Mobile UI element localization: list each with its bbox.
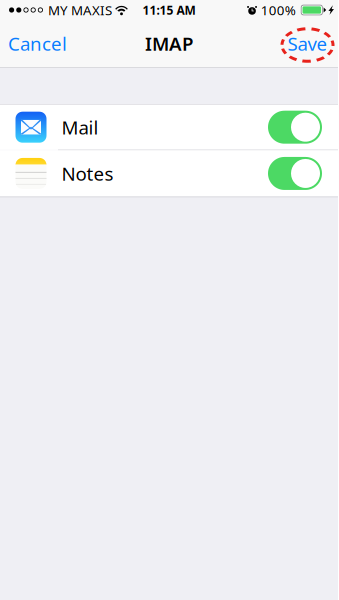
staticText: Cancel xyxy=(8,31,67,56)
staticText: Notes xyxy=(61,161,113,186)
button[interactable]: Mail xyxy=(0,105,338,150)
staticText: Mail xyxy=(61,115,98,140)
staticText: 11:15 AM xyxy=(142,2,195,18)
button[interactable]: Notes xyxy=(0,150,338,197)
staticText: Save xyxy=(287,31,327,56)
staticText: IMAP xyxy=(145,31,193,56)
staticText: MY MAXIS xyxy=(48,1,112,19)
staticText: 100% xyxy=(261,1,296,19)
button[interactable]: Cancel xyxy=(0,20,81,67)
button[interactable]: Save xyxy=(278,20,336,67)
